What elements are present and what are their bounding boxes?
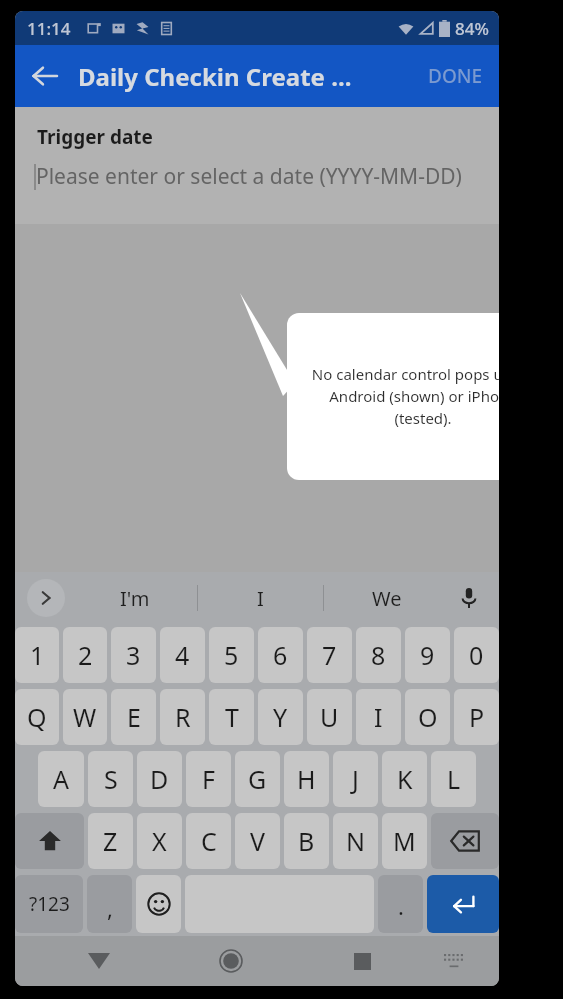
button[interactable]: H: [284, 751, 329, 807]
button[interactable]: Z: [88, 813, 133, 869]
button[interactable]: We: [324, 572, 449, 624]
button[interactable]: X: [137, 813, 182, 869]
button[interactable]: O: [405, 689, 450, 745]
staticText: 7: [322, 638, 337, 672]
button[interactable]: More suggestions: [27, 579, 65, 617]
staticText: I: [374, 700, 383, 734]
button[interactable]: 1: [15, 627, 59, 683]
button[interactable]: Enter: [427, 875, 499, 933]
button[interactable]: D: [137, 751, 182, 807]
staticText: X: [152, 824, 167, 858]
button[interactable]: N: [333, 813, 378, 869]
staticText: F: [202, 762, 215, 796]
staticText: DONE: [428, 63, 483, 89]
button[interactable]: J: [333, 751, 378, 807]
staticText: H: [297, 762, 316, 796]
staticText: G: [248, 762, 267, 796]
staticText: A: [53, 762, 69, 796]
button[interactable]: 7: [307, 627, 352, 683]
staticText: Q: [27, 700, 47, 734]
button[interactable]: Backspace: [431, 813, 499, 869]
button[interactable]: L: [431, 751, 476, 807]
button[interactable]: T: [209, 689, 254, 745]
button[interactable]: V: [235, 813, 280, 869]
button[interactable]: ?123: [15, 875, 83, 933]
button[interactable]: 8: [356, 627, 401, 683]
button[interactable]: C: [186, 813, 231, 869]
button[interactable]: Back: [77, 939, 121, 983]
staticText: Please enter or select a date (YYYY-MM-D…: [36, 162, 462, 191]
staticText: 11:14: [27, 17, 71, 40]
button[interactable]: R: [160, 689, 205, 745]
staticText: 2: [78, 638, 93, 672]
button[interactable]: 9: [405, 627, 450, 683]
button[interactable]: 6: [258, 627, 303, 683]
staticText: 1: [30, 638, 45, 672]
staticText: No calendar control pops up on Android (…: [303, 364, 499, 429]
staticText: .: [398, 891, 404, 921]
staticText: E: [127, 700, 141, 734]
staticText: We: [372, 585, 402, 612]
staticText: V: [250, 824, 266, 858]
button[interactable]: 5: [209, 627, 254, 683]
button[interactable]: DONE: [420, 55, 491, 97]
staticText: O: [418, 700, 438, 734]
button[interactable]: Hide keyboard: [434, 941, 474, 981]
button[interactable]: A: [38, 751, 84, 807]
staticText: 4: [175, 638, 190, 672]
staticText: 3: [126, 638, 141, 672]
staticText: K: [397, 762, 413, 796]
button[interactable]: P: [454, 689, 499, 745]
staticText: S: [104, 762, 118, 796]
button[interactable]: .: [378, 875, 423, 933]
staticText: ?123: [29, 891, 70, 917]
button[interactable]: No calendar control pops up on Android (…: [287, 313, 499, 480]
staticText: J: [352, 762, 359, 796]
button[interactable]: G: [235, 751, 280, 807]
button[interactable]: Shift: [15, 813, 84, 869]
button[interactable]: 3: [111, 627, 156, 683]
button[interactable]: E: [111, 689, 156, 745]
button[interactable]: K: [382, 751, 427, 807]
staticText: ,: [107, 893, 113, 923]
staticText: W: [73, 700, 97, 734]
button[interactable]: F: [186, 751, 231, 807]
staticText: C: [201, 824, 217, 858]
button[interactable]: I'm: [73, 572, 197, 624]
button[interactable]: S: [88, 751, 133, 807]
button[interactable]: Emoji: [136, 875, 181, 933]
button[interactable]: 4: [160, 627, 205, 683]
staticText: I: [257, 585, 264, 612]
button[interactable]: Q: [15, 689, 59, 745]
button[interactable]: M: [382, 813, 427, 869]
button[interactable]: 0: [454, 627, 499, 683]
staticText: Trigger date: [37, 124, 153, 150]
button[interactable]: I: [198, 572, 323, 624]
button[interactable]: Voice input: [451, 580, 487, 616]
button[interactable]: Recents: [340, 939, 384, 983]
button[interactable]: ,: [87, 875, 132, 933]
button[interactable]: Y: [258, 689, 303, 745]
button[interactable]: Home: [209, 939, 253, 983]
staticText: M: [393, 824, 416, 858]
staticText: R: [175, 700, 191, 734]
button[interactable]: B: [284, 813, 329, 869]
staticText: B: [298, 824, 315, 858]
button[interactable]: U: [307, 689, 352, 745]
staticText: 84%: [455, 17, 489, 40]
button[interactable]: W: [63, 689, 107, 745]
staticText: L: [447, 762, 461, 796]
button[interactable]: Back: [21, 52, 69, 100]
staticText: D: [150, 762, 169, 796]
staticText: N: [346, 824, 366, 858]
staticText: 8: [371, 638, 386, 672]
button[interactable]: I: [356, 689, 401, 745]
staticText: 6: [273, 638, 288, 672]
button[interactable]: 2: [63, 627, 107, 683]
staticText: I'm: [120, 585, 150, 612]
button[interactable]: Please enter or select a date (YYYY-MM-D…: [15, 162, 499, 191]
staticText: 0: [469, 638, 484, 672]
staticText: Z: [103, 824, 118, 858]
staticText: Y: [273, 700, 288, 734]
